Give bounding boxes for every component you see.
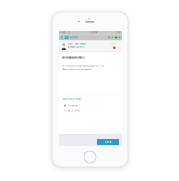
staticText: SEND <box>104 141 108 143</box>
button[interactable]: SEND <box>97 139 119 145</box>
staticText: ıl AT&T LTE <box>60 32 70 34</box>
staticText: 75% <box>117 32 121 34</box>
staticText: Out of office <box>67 109 79 112</box>
staticText: MESSAGE <box>69 36 77 39</box>
staticText: Expire 06/30/16 <box>70 46 84 48</box>
staticText: 4:20 PM <box>89 32 97 34</box>
button[interactable]: Participating <box>64 103 120 107</box>
staticText: An evacuation exercise will take place b… <box>62 65 104 67</box>
staticText: 10:29 <box>110 43 114 45</box>
staticText: From: User Name <box>68 43 86 45</box>
button[interactable]: Contacts <box>115 36 117 38</box>
staticText: Participating <box>67 104 77 107</box>
button[interactable]: MESSAGE <box>65 35 77 39</box>
button[interactable]: Alerts <box>111 36 113 38</box>
staticText: Building Evacuation Drill <box>62 56 85 59</box>
staticText: Please pick an answer <box>62 98 81 100</box>
button[interactable]: Back <box>61 35 65 40</box>
button[interactable]: Out of office <box>64 108 120 112</box>
staticText: Please confirm your participation. <box>62 68 92 70</box>
